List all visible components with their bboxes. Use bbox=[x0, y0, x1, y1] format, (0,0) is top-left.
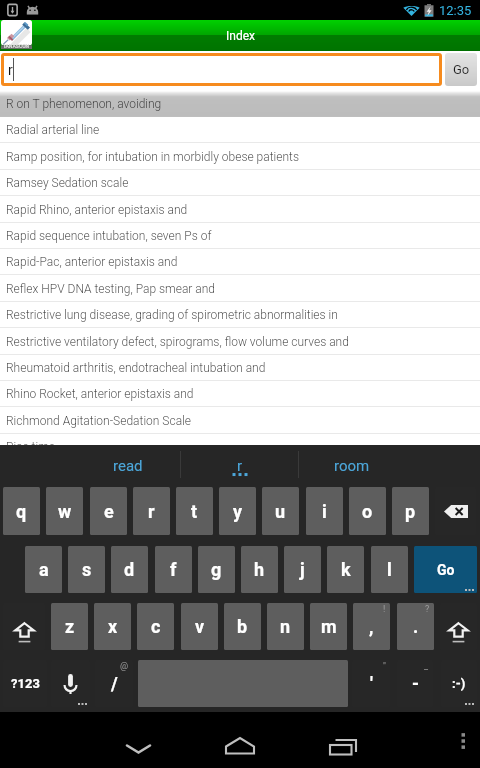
button[interactable]: Rapid-Pac, anterior epistaxis and bbox=[0, 249, 480, 275]
button[interactable]: g bbox=[198, 546, 235, 593]
staticText: v bbox=[195, 616, 205, 637]
button[interactable]: Hide keyboard bbox=[114, 720, 164, 768]
button[interactable]: r bbox=[133, 487, 170, 535]
button[interactable]: Restrictive ventilatory defect, spirogra… bbox=[0, 329, 480, 355]
button[interactable]: v bbox=[181, 603, 218, 650]
button[interactable]: , bbox=[353, 603, 390, 650]
staticText: h bbox=[254, 559, 265, 580]
button[interactable]: Rapid Rhino, anterior epistaxis and bbox=[0, 197, 480, 223]
staticText: j bbox=[300, 559, 305, 580]
button[interactable]: / bbox=[95, 660, 133, 707]
button[interactable]: room bbox=[292, 450, 412, 482]
staticText: Go bbox=[453, 62, 470, 77]
button[interactable]: x bbox=[94, 603, 131, 650]
button[interactable]: :-) bbox=[441, 660, 477, 707]
button[interactable]: Go bbox=[414, 546, 477, 593]
button[interactable]: p bbox=[392, 487, 429, 535]
staticText: m bbox=[321, 616, 337, 637]
button[interactable]: Rise time bbox=[0, 434, 480, 445]
staticText: l bbox=[387, 559, 392, 580]
button[interactable]: y bbox=[219, 487, 256, 535]
staticText: . bbox=[413, 616, 419, 637]
button[interactable]: f bbox=[155, 546, 192, 593]
button[interactable]: More options bbox=[446, 712, 480, 768]
staticText: Rheumatoid arthritis, endotracheal intub… bbox=[6, 361, 266, 375]
button[interactable]: z bbox=[51, 603, 88, 650]
staticText: e bbox=[104, 501, 114, 522]
button[interactable]: Richmond Agitation-Sedation Scale bbox=[0, 408, 480, 434]
staticText: u bbox=[275, 501, 286, 522]
button[interactable]: r bbox=[1, 53, 442, 86]
staticText: Ramsey Sedation scale bbox=[6, 176, 129, 190]
button[interactable]: e bbox=[90, 487, 127, 535]
button[interactable]: m bbox=[310, 603, 347, 650]
button[interactable]: a bbox=[25, 546, 62, 593]
button[interactable]: Delete bbox=[435, 487, 476, 535]
button[interactable]: Restrictive lung disease, grading of spi… bbox=[0, 302, 480, 328]
button[interactable]: . bbox=[397, 603, 434, 650]
staticText: p bbox=[405, 501, 416, 522]
staticText: :-) bbox=[452, 676, 466, 691]
staticText: ?123 bbox=[11, 676, 40, 691]
staticText: k bbox=[341, 559, 351, 580]
button[interactable]: j bbox=[284, 546, 321, 593]
button[interactable]: ?123 bbox=[3, 660, 47, 707]
button[interactable]: - bbox=[397, 660, 433, 707]
button[interactable]: Recent apps bbox=[318, 720, 366, 768]
staticText: c bbox=[151, 616, 161, 637]
button[interactable]: Ramsey Sedation scale bbox=[0, 170, 480, 196]
button[interactable]: Rhino Rocket, anterior epistaxis and bbox=[0, 381, 480, 407]
staticText: Rapid Rhino, anterior epistaxis and bbox=[6, 203, 188, 217]
staticText: b bbox=[237, 616, 248, 637]
button[interactable]: R on T phenomenon, avoiding bbox=[0, 91, 480, 117]
staticText: Rapid sequence intubation, seven Ps of bbox=[6, 229, 212, 243]
staticText: _ bbox=[424, 661, 429, 672]
staticText: o bbox=[362, 501, 373, 522]
button[interactable]: s bbox=[68, 546, 105, 593]
button[interactable]: n bbox=[267, 603, 304, 650]
button[interactable]: r bbox=[188, 450, 292, 482]
staticText: Rapid-Pac, anterior epistaxis and bbox=[6, 255, 178, 269]
button[interactable]: Shift bbox=[440, 603, 477, 650]
button[interactable]: i bbox=[306, 487, 343, 535]
staticText: @ bbox=[120, 661, 129, 672]
staticText: x bbox=[108, 616, 118, 637]
staticText: ! bbox=[383, 604, 386, 615]
button[interactable]: q bbox=[3, 487, 40, 535]
button[interactable]: ' bbox=[352, 660, 390, 707]
staticText: r bbox=[8, 62, 13, 78]
staticText: i bbox=[322, 501, 327, 522]
button[interactable]: Ramp position, for intubation in morbidl… bbox=[0, 144, 480, 170]
staticText: Rhino Rocket, anterior epistaxis and bbox=[6, 387, 194, 401]
button[interactable]: d bbox=[111, 546, 148, 593]
staticText: y bbox=[233, 501, 243, 522]
staticText: " bbox=[383, 661, 386, 672]
button[interactable]: b bbox=[224, 603, 261, 650]
button[interactable]: w bbox=[46, 487, 83, 535]
button[interactable]: h bbox=[241, 546, 278, 593]
button[interactable]: Voice input bbox=[51, 660, 90, 707]
button[interactable]: Rheumatoid arthritis, endotracheal intub… bbox=[0, 355, 480, 381]
staticText: w bbox=[58, 501, 72, 522]
staticText: Richmond Agitation-Sedation Scale bbox=[6, 414, 191, 428]
button[interactable]: l bbox=[371, 546, 408, 593]
button[interactable]: App home bbox=[1, 20, 32, 49]
button[interactable]: Shift bbox=[3, 603, 45, 650]
staticText: IANASCON bbox=[4, 43, 30, 49]
button[interactable]: k bbox=[327, 546, 364, 593]
staticText: z bbox=[65, 616, 75, 637]
button[interactable]: Go bbox=[445, 53, 477, 86]
button[interactable]: read bbox=[68, 450, 188, 482]
button[interactable]: t bbox=[176, 487, 213, 535]
button[interactable]: Radial arterial line bbox=[0, 117, 480, 143]
button[interactable]: Home bbox=[216, 720, 264, 768]
staticText: t bbox=[191, 501, 198, 522]
button[interactable]: o bbox=[349, 487, 386, 535]
button[interactable]: c bbox=[137, 603, 174, 650]
button[interactable]: Rapid sequence intubation, seven Ps of bbox=[0, 223, 480, 249]
button[interactable]: u bbox=[262, 487, 299, 535]
staticText: ? bbox=[425, 604, 430, 615]
staticText: Restrictive ventilatory defect, spirogra… bbox=[6, 335, 349, 349]
button[interactable]: Reflex HPV DNA testing, Pap smear and bbox=[0, 276, 480, 302]
